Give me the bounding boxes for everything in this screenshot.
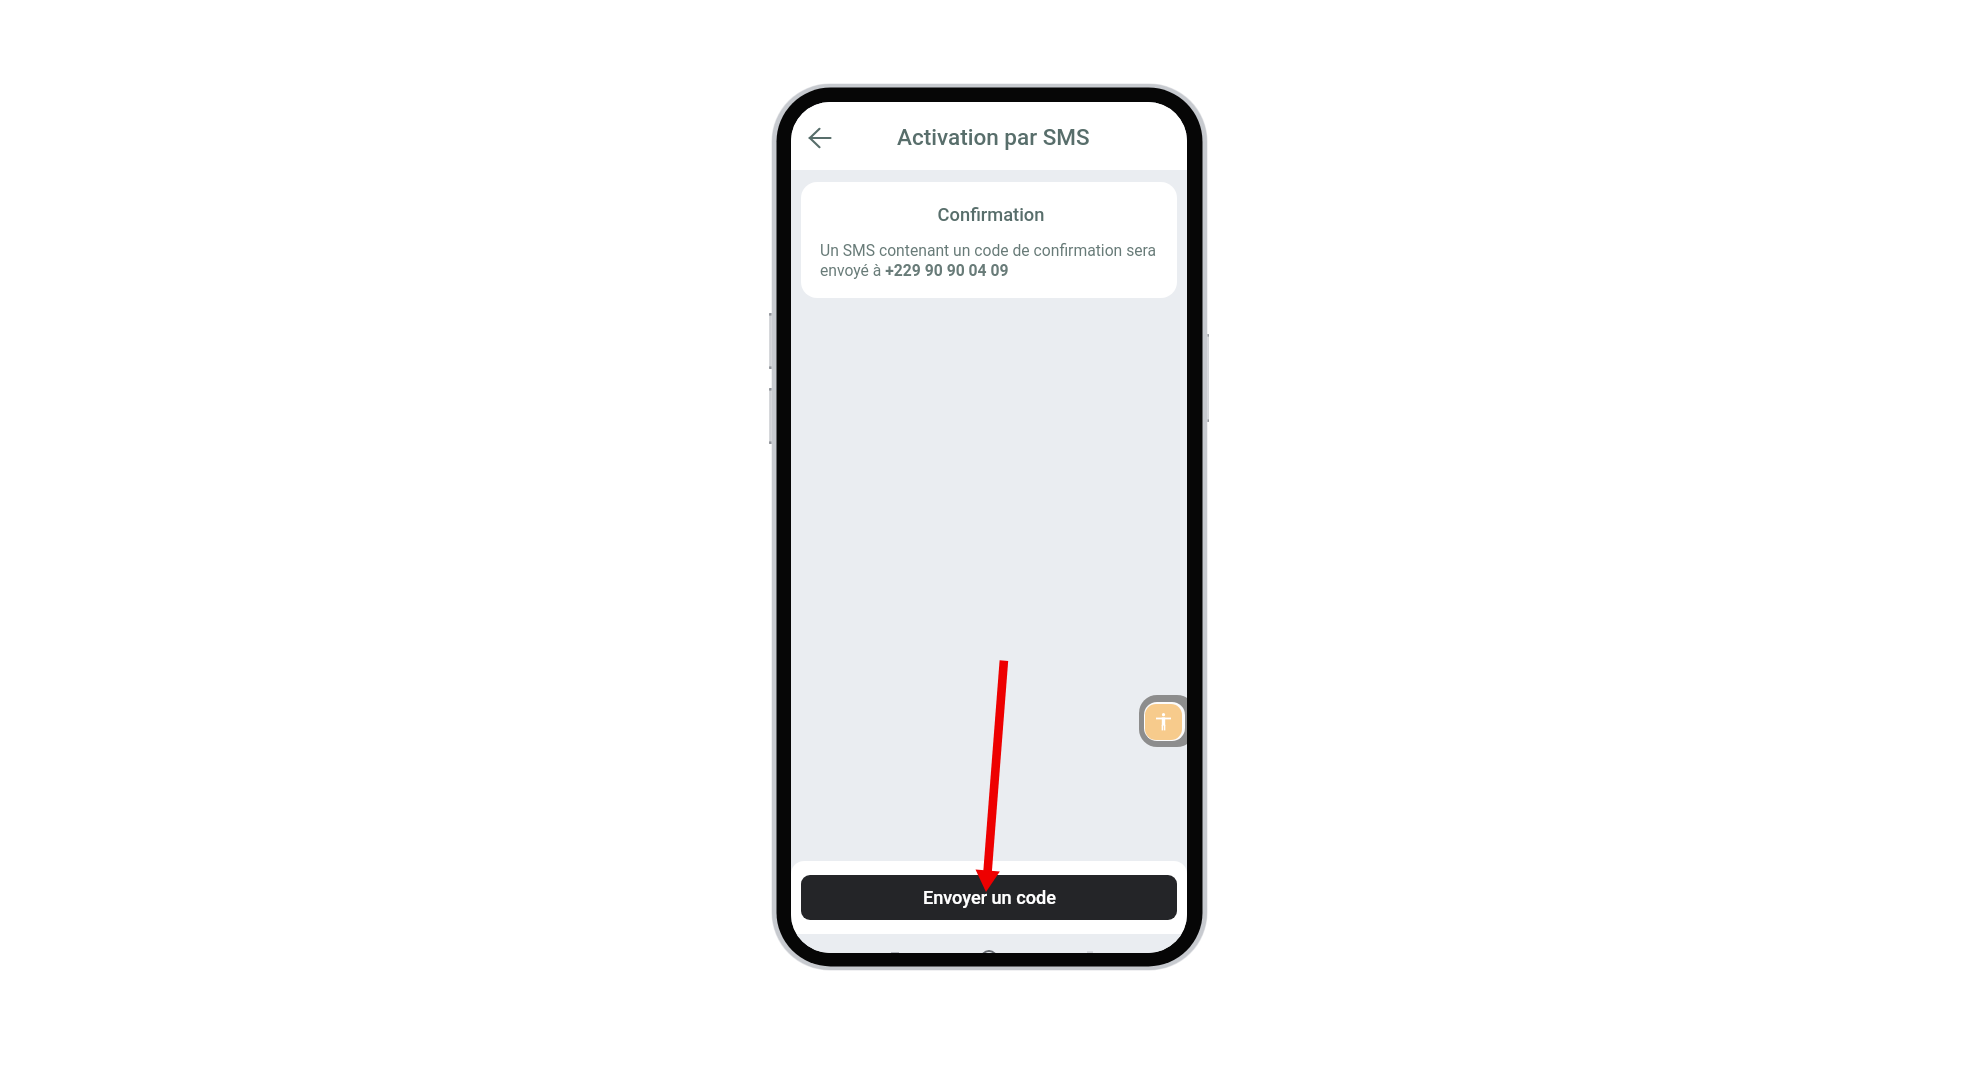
button[interactable]: Accessibility menu xyxy=(1145,704,1182,740)
staticText: Envoyer un code xyxy=(923,887,1056,908)
button[interactable]: Back xyxy=(798,116,842,160)
staticText: Un SMS contenant un code de confirmation… xyxy=(820,241,1158,280)
staticText: Activation par SMS xyxy=(897,124,1090,150)
button[interactable]: Envoyer un code xyxy=(801,875,1177,920)
staticText: Confirmation xyxy=(822,204,1160,225)
